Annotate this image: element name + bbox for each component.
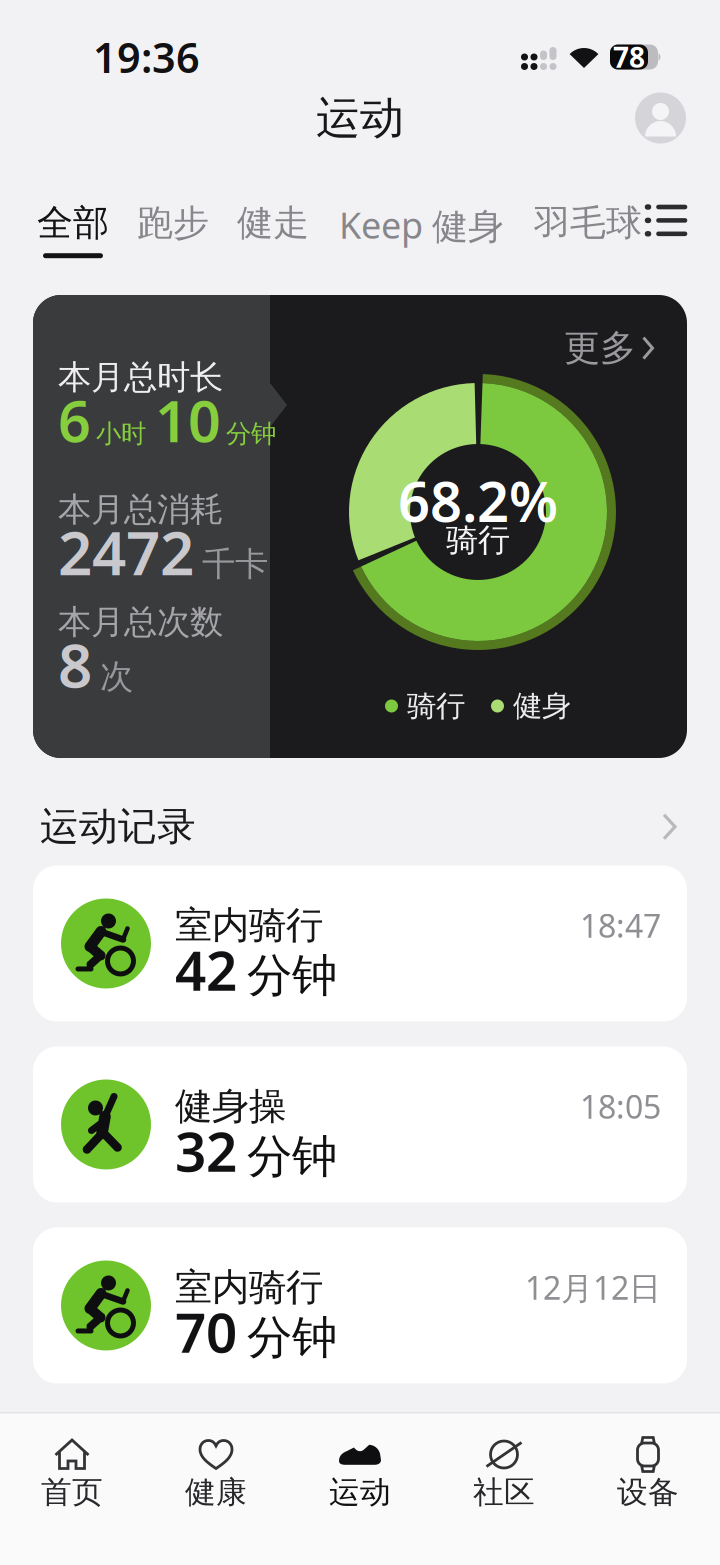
staticText: 12月12日 bbox=[525, 1266, 661, 1309]
staticText: 70 bbox=[175, 1295, 237, 1368]
staticText: 首页 bbox=[41, 1473, 103, 1511]
staticText: 运动记录 bbox=[40, 803, 196, 850]
button[interactable]: 运动 bbox=[288, 1435, 432, 1511]
staticText: 更多 bbox=[564, 326, 636, 370]
button[interactable]: 健身操 bbox=[33, 1046, 687, 1202]
button[interactable]: 室内骑行 bbox=[33, 865, 687, 1021]
staticText: 19:36 bbox=[93, 30, 200, 84]
staticText: 8 bbox=[58, 625, 92, 704]
staticText: 本月总时长 bbox=[58, 357, 223, 398]
staticText: 跑步 bbox=[137, 201, 209, 245]
staticText: 次 bbox=[100, 656, 133, 697]
staticText: 本月总次数 bbox=[58, 602, 223, 643]
staticText: 小时 bbox=[96, 418, 146, 449]
button[interactable]: 社区 bbox=[432, 1435, 576, 1511]
button[interactable]: 室内骑行 bbox=[33, 1227, 687, 1383]
button[interactable]: 全部运动记录 bbox=[662, 813, 678, 841]
staticText: 健身 bbox=[513, 688, 571, 724]
staticText: 运动 bbox=[329, 1473, 391, 1511]
staticText: 32 bbox=[175, 1114, 237, 1187]
staticText: 千卡 bbox=[202, 544, 268, 584]
staticText: 68.2% bbox=[398, 463, 558, 537]
staticText: 18:05 bbox=[580, 1085, 661, 1128]
button[interactable]: 健走 bbox=[237, 201, 309, 258]
staticText: 10 bbox=[155, 382, 221, 458]
button[interactable]: 跑步 bbox=[137, 201, 209, 258]
staticText: 2472 bbox=[58, 512, 194, 592]
staticText: 6 bbox=[58, 382, 91, 458]
staticText: 社区 bbox=[473, 1473, 535, 1511]
button[interactable]: 健康 bbox=[144, 1435, 288, 1511]
staticText: 健走 bbox=[237, 201, 309, 245]
button[interactable]: 首页 bbox=[0, 1435, 144, 1511]
staticText: 室内骑行 bbox=[175, 902, 323, 948]
button[interactable]: 设备 bbox=[576, 1435, 720, 1511]
staticText: 分钟 bbox=[226, 418, 276, 449]
staticText: 骑行 bbox=[446, 520, 510, 560]
button[interactable]: 羽毛球 bbox=[534, 201, 642, 258]
staticText: 分钟 bbox=[247, 1129, 337, 1185]
button[interactable]: 运动列表 bbox=[645, 201, 687, 241]
staticText: Keep 健身 bbox=[339, 201, 504, 249]
staticText: 42 bbox=[175, 933, 237, 1006]
button[interactable]: 更多 bbox=[564, 326, 655, 370]
staticText: 设备 bbox=[617, 1473, 679, 1511]
staticText: 羽毛球 bbox=[534, 201, 642, 245]
staticText: 室内骑行 bbox=[175, 1264, 323, 1310]
staticText: 18:47 bbox=[580, 904, 661, 947]
staticText: 78 bbox=[613, 38, 645, 76]
staticText: 本月总消耗 bbox=[58, 489, 223, 530]
button[interactable]: Keep 健身 bbox=[339, 201, 504, 262]
staticText: 健身操 bbox=[175, 1083, 286, 1129]
staticText: 分钟 bbox=[247, 1310, 337, 1366]
button[interactable]: 我的账户 bbox=[635, 92, 686, 143]
button[interactable]: 全部 bbox=[37, 201, 109, 258]
staticText: 骑行 bbox=[407, 688, 465, 724]
staticText: 分钟 bbox=[247, 948, 337, 1004]
staticText: 运动 bbox=[316, 91, 404, 145]
staticText: 健康 bbox=[185, 1473, 247, 1511]
staticText: 全部 bbox=[37, 201, 109, 245]
